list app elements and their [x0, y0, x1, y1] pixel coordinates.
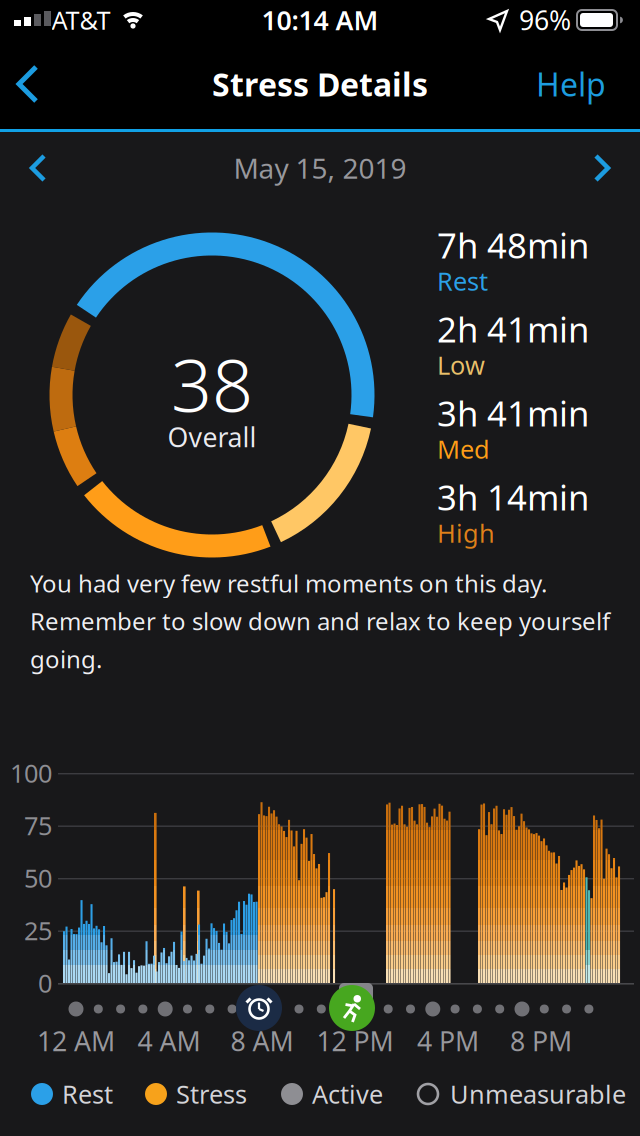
staticText: Low	[437, 348, 485, 382]
button[interactable]: Next day	[580, 150, 616, 186]
staticText: 38	[171, 336, 253, 432]
staticText: 3h 41min	[437, 390, 589, 436]
staticText: High	[437, 516, 495, 550]
staticText: Stress Details	[212, 63, 428, 105]
staticText: 12 PM	[316, 1023, 393, 1059]
staticText: Overall	[167, 419, 256, 455]
staticText: 100	[10, 756, 52, 790]
staticText: AT&T	[51, 3, 110, 37]
staticText: 7h 48min	[437, 222, 589, 268]
staticText: 2h 41min	[437, 306, 589, 352]
button[interactable]: Help	[526, 59, 616, 109]
staticText: Unmeasurable	[450, 1077, 626, 1111]
staticText: Active	[312, 1077, 383, 1111]
staticText: Rest	[437, 264, 488, 298]
staticText: Help	[536, 63, 606, 105]
staticText: 25	[24, 914, 52, 947]
button[interactable]: Back	[12, 63, 56, 107]
button[interactable]: Alarm event	[236, 985, 282, 1031]
staticText: 75	[24, 809, 52, 842]
staticText: Rest	[62, 1077, 113, 1111]
button[interactable]: Previous day	[24, 150, 60, 186]
staticText: May 15, 2019	[233, 149, 406, 187]
staticText: 4 AM	[137, 1023, 200, 1059]
staticText: 8 PM	[510, 1023, 572, 1059]
staticText: 96%	[519, 2, 571, 38]
staticText: 0	[38, 966, 52, 1000]
staticText: 10:14 AM	[261, 2, 378, 38]
staticText: 50	[24, 861, 52, 895]
staticText: Med	[437, 432, 490, 466]
staticText: 8 AM	[230, 1023, 293, 1059]
staticText: You had very few restful moments on this…	[30, 567, 610, 675]
staticText: 12 AM	[37, 1023, 115, 1059]
button[interactable]: Activity event	[329, 985, 375, 1031]
staticText: 4 PM	[417, 1023, 479, 1059]
staticText: Stress	[176, 1077, 247, 1111]
staticText: 3h 14min	[437, 474, 589, 520]
